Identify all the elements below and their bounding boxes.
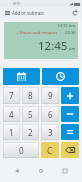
button[interactable]: 6 — [41, 106, 59, 122]
button[interactable]: History — [69, 7, 81, 19]
staticText: 7 — [9, 90, 14, 101]
staticText: pm — [69, 46, 76, 52]
staticText: 1 — [9, 127, 14, 138]
button[interactable]: 4 — [3, 106, 20, 122]
staticText: Add or subtract — [12, 10, 44, 16]
button[interactable]: Home — [34, 164, 48, 178]
staticText: 2 — [28, 127, 33, 138]
staticText: 3 — [48, 127, 53, 138]
staticText: 8 — [28, 90, 33, 101]
button[interactable]: Plus — [61, 87, 79, 104]
button[interactable]: 3 — [41, 124, 59, 140]
button[interactable]: Back — [10, 164, 24, 178]
button[interactable]: 0 — [3, 142, 39, 158]
staticText: 4 — [9, 109, 14, 120]
button[interactable]: Clear — [41, 142, 59, 158]
button[interactable]: 8 — [22, 87, 39, 104]
button[interactable]: 1 — [3, 124, 20, 140]
staticText: MTS — [13, 1, 21, 6]
button[interactable]: Backspace — [61, 142, 79, 158]
staticText: + Hours and minutes — [16, 30, 58, 36]
button[interactable]: 2 — [22, 124, 39, 140]
button[interactable]: Date — [3, 68, 40, 85]
button[interactable]: Recents — [58, 164, 72, 178]
staticText: 10:15 am — [57, 23, 76, 29]
staticText: 0 — [19, 145, 24, 156]
button[interactable]: 9 — [41, 87, 59, 104]
button[interactable]: 5 — [22, 106, 39, 122]
staticText: 02:30 — [65, 30, 76, 36]
staticText: 6 — [48, 109, 53, 120]
staticText: 12:45 — [38, 38, 68, 54]
button[interactable]: Minus — [61, 106, 79, 122]
button[interactable]: Time — [42, 68, 79, 85]
staticText: 9 — [48, 90, 53, 101]
staticText: 5 — [28, 109, 33, 120]
button[interactable]: Menu — [0, 7, 12, 19]
button[interactable]: Equals — [61, 124, 79, 140]
button[interactable]: 7 — [3, 87, 20, 104]
staticText: C — [47, 145, 53, 156]
